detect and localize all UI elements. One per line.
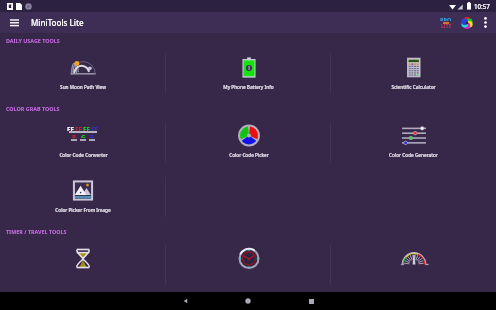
staticText: FF (67, 125, 75, 131)
staticText: TIMER / TRAVEL TOOLS (6, 228, 67, 235)
button[interactable] (166, 237, 331, 292)
staticText: Color Code Picker (229, 152, 269, 158)
staticText: LITE (441, 23, 452, 28)
button[interactable]: Sun Moon Path View (0, 46, 166, 101)
staticText: PRO (440, 16, 452, 21)
staticText: Color Picker From Image (55, 207, 111, 213)
staticText: G (81, 133, 86, 138)
staticText: FF (91, 125, 99, 131)
staticText: Color Code Generator (389, 152, 438, 158)
button[interactable] (0, 237, 166, 292)
button[interactable]: Open navigation drawer (0, 12, 28, 33)
staticText: My Phone Battery Info (223, 84, 274, 90)
staticText: R (72, 133, 77, 138)
button[interactable]: FF (0, 114, 166, 169)
staticText: FF (75, 125, 83, 131)
staticText: Sun Moon Path View (60, 84, 106, 90)
button[interactable]: Upgrade to Pro (435, 12, 456, 33)
staticText: COLOR GRAB TOOLS (6, 105, 60, 112)
staticText: DAILY USAGE TOOLS (6, 37, 60, 44)
staticText: Scientific Calculator (391, 84, 436, 90)
button[interactable]: More options (477, 12, 494, 33)
button[interactable]: Back (176, 292, 194, 310)
staticText: Color Code Converter (59, 152, 108, 158)
button[interactable]: Scientific Calculator (331, 46, 496, 101)
button[interactable]: Home (239, 292, 257, 310)
button[interactable]: Color Picker From Image (0, 169, 166, 224)
button[interactable]: Color Code Generator (331, 114, 496, 169)
staticText: MiniTools Lite (31, 17, 84, 28)
staticText: 10:57 (474, 2, 490, 10)
button[interactable]: Color Code Picker (166, 114, 331, 169)
staticText: FF (83, 125, 91, 131)
staticText: B (90, 133, 95, 138)
button[interactable]: My Phone Battery Info (166, 46, 331, 101)
button[interactable]: Change theme (456, 12, 477, 33)
button[interactable] (331, 237, 496, 292)
button[interactable]: Recent apps (302, 292, 320, 310)
